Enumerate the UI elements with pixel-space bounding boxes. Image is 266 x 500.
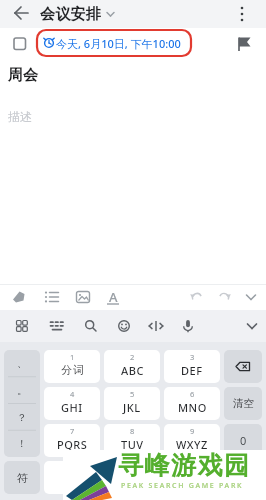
button[interactable] [72, 284, 94, 310]
button[interactable]: 3 [164, 350, 220, 383]
staticText: A [109, 288, 118, 306]
button[interactable]: A [104, 284, 122, 310]
staticText: GHI [61, 400, 83, 415]
staticText: 5 [130, 389, 135, 399]
staticText: ！ [17, 437, 27, 450]
staticText: 会议安排 [40, 5, 102, 24]
button[interactable] [45, 310, 69, 342]
staticText: MNO [178, 400, 207, 415]
button[interactable] [144, 310, 168, 342]
staticText: 今天, 6月10日, 下午10:00 [56, 36, 181, 51]
staticText: 2 [130, 352, 135, 362]
button[interactable] [41, 284, 63, 310]
staticText: WXYZ [176, 437, 208, 452]
staticText: 。 [17, 384, 27, 397]
staticText: 3 [190, 352, 195, 362]
staticText: ？ [17, 411, 27, 424]
button[interactable] [8, 284, 30, 310]
staticText: 6 [190, 389, 195, 399]
button[interactable] [234, 36, 254, 54]
staticText: 4 [70, 389, 75, 399]
button[interactable]: 7 [44, 424, 100, 457]
button[interactable]: 清空 [224, 387, 262, 420]
staticText: 清空 [233, 397, 254, 410]
staticText: 、 [17, 357, 27, 370]
button[interactable] [224, 461, 262, 494]
staticText: PQRS [57, 437, 88, 452]
staticText: 周会 [8, 66, 38, 85]
button[interactable] [12, 36, 28, 52]
button[interactable]: 0 [224, 424, 262, 457]
staticText: 8 [130, 426, 135, 436]
button[interactable] [240, 310, 264, 342]
button[interactable] [10, 310, 34, 342]
button[interactable] [186, 284, 208, 310]
staticText: 123 [63, 470, 82, 485]
staticText: 0 [240, 433, 247, 448]
staticText: ABC [121, 363, 144, 378]
button[interactable] [176, 310, 200, 342]
button[interactable]: 4 [44, 387, 100, 420]
button[interactable]: 8 [104, 424, 160, 457]
button[interactable]: 1 [44, 350, 100, 383]
button[interactable]: 符 [4, 461, 40, 494]
button[interactable]: 5 [104, 387, 160, 420]
button[interactable] [213, 284, 235, 310]
staticText: 7 [70, 426, 75, 436]
staticText: 寻峰游戏园 [118, 450, 251, 481]
button[interactable]: 6 [164, 387, 220, 420]
button[interactable]: 会议安排 [40, 0, 102, 28]
button[interactable]: 今天, 6月10日, 下午10:00 [36, 29, 192, 57]
button[interactable]: 寻峰游戏园 [63, 450, 266, 500]
button[interactable]: 、 [4, 350, 40, 457]
staticText: PEAK SEARCH GAME PARK [121, 481, 244, 491]
staticText: 9 [190, 426, 195, 436]
button[interactable]: 123 [44, 461, 100, 494]
button[interactable] [9, 1, 33, 25]
button[interactable] [230, 2, 254, 26]
staticText: 分词 [61, 363, 84, 377]
button[interactable]: 2 [104, 350, 160, 383]
staticText: TUV [121, 437, 144, 452]
staticText: 描述 [8, 109, 32, 124]
staticText: JKL [123, 400, 141, 415]
button[interactable] [104, 461, 220, 494]
staticText: 符 [17, 471, 28, 485]
button[interactable] [112, 310, 136, 342]
button[interactable] [79, 310, 103, 342]
staticText: 1 [70, 352, 75, 362]
button[interactable]: 9 [164, 424, 220, 457]
staticText: DEF [181, 363, 203, 378]
button[interactable] [240, 284, 262, 310]
button[interactable] [224, 350, 262, 383]
